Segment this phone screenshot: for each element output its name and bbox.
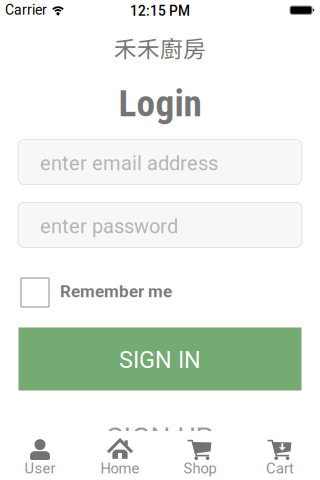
- button[interactable]: Remember me: [0, 278, 320, 307]
- staticText: Carrier: [5, 2, 47, 18]
- staticText: Cart: [266, 460, 294, 477]
- button[interactable]: User: [0, 431, 80, 480]
- staticText: User: [24, 460, 55, 477]
- button[interactable]: Cart: [240, 431, 320, 480]
- staticText: 禾禾廚房: [114, 31, 206, 64]
- staticText: enter password: [40, 215, 178, 238]
- staticText: enter email address: [40, 152, 218, 175]
- staticText: SIGN UP: [106, 422, 213, 454]
- button[interactable]: Home: [80, 431, 160, 480]
- staticText: 12:15 PM: [130, 3, 190, 19]
- staticText: SIGN IN: [119, 346, 201, 374]
- button[interactable]: SIGN UP: [18, 406, 301, 469]
- staticText: Login: [118, 82, 201, 125]
- button[interactable]: Shop: [160, 431, 240, 480]
- button[interactable]: SIGN IN: [18, 327, 301, 390]
- staticText: Shop: [183, 460, 216, 477]
- staticText: Home: [100, 460, 139, 477]
- staticText: Remember me: [60, 282, 172, 301]
